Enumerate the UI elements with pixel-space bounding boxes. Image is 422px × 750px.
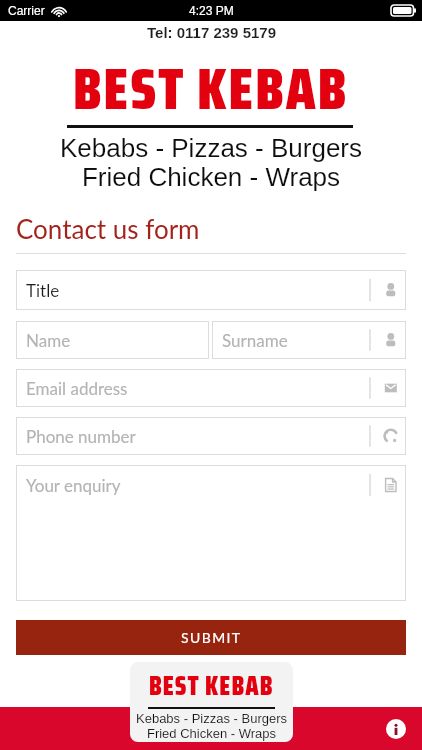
button[interactable]: Information: [386, 719, 406, 739]
staticText: Email address: [26, 378, 128, 398]
staticText: Fried Chicken - Wraps: [0, 162, 422, 191]
staticText: Title: [26, 280, 60, 300]
staticText: 4:23 PM: [189, 4, 234, 17]
staticText: Tel: 0117 239 5179: [147, 24, 276, 41]
button[interactable]: Your enquiry: [16, 465, 406, 601]
staticText: SUBMIT: [181, 629, 242, 646]
staticText: BEST KEBAB: [73, 43, 349, 125]
button[interactable]: Phone number: [16, 417, 406, 455]
staticText: Fried Chicken - Wraps: [130, 726, 293, 741]
button[interactable]: Surname: [212, 321, 406, 359]
button[interactable]: Title: [16, 270, 406, 310]
staticText: Surname: [222, 330, 288, 350]
staticText: Your enquiry: [26, 475, 121, 495]
button[interactable]: Name: [16, 321, 209, 359]
staticText: Carrier: [8, 4, 45, 17]
staticText: Name: [26, 330, 71, 350]
staticText: Phone number: [26, 426, 136, 446]
staticText: Kebabs - Pizzas - Burgers: [130, 711, 293, 726]
button[interactable]: Email address: [16, 369, 406, 407]
staticText: Kebabs - Pizzas - Burgers: [0, 133, 422, 162]
staticText: Contact us form: [16, 213, 200, 244]
button[interactable]: SUBMIT: [16, 620, 406, 655]
staticText: BEST KEBAB: [149, 665, 274, 706]
button[interactable]: BEST KEBAB: [130, 662, 293, 742]
